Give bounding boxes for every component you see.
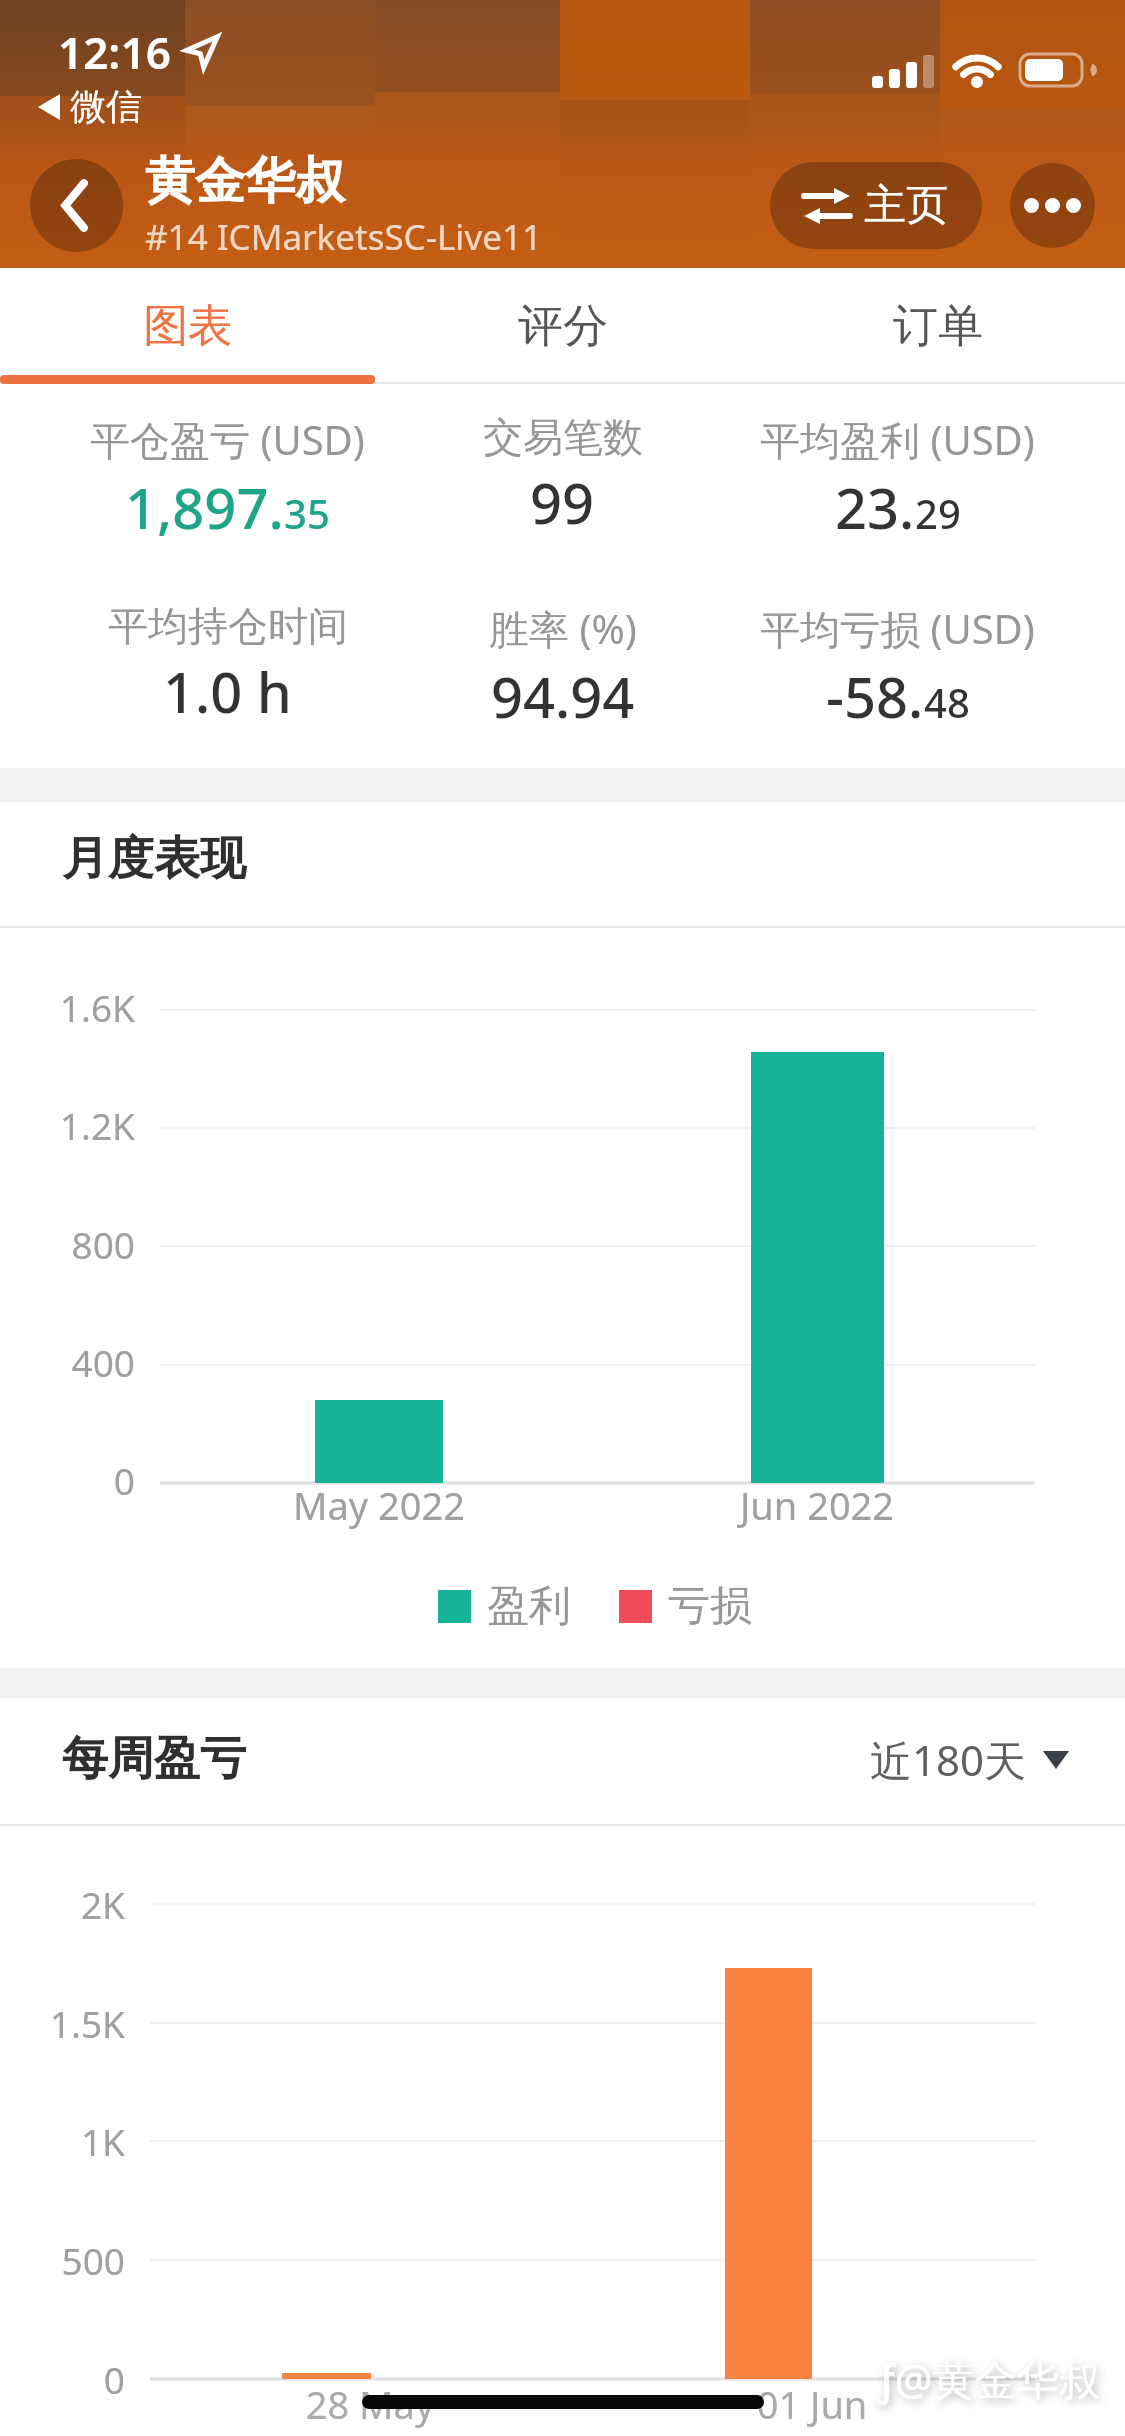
staticText: 评分 [518,298,608,355]
staticText: #14 ICMarketsSC-Live11 [145,213,542,261]
staticText: 01 Jun [692,2378,932,2430]
button[interactable]: 主页 [770,162,982,249]
staticText: 28 May [250,2378,490,2430]
staticText: Jun 2022 [697,1479,937,1531]
staticText: 94.94 [491,658,635,734]
staticText: 99 [530,464,595,540]
staticText: 平均持仓时间 [108,601,348,651]
staticText: 图表 [143,298,233,355]
staticText: 订单 [893,298,983,355]
staticText: 48 [924,675,970,729]
staticText: 1.6K [0,982,135,1032]
staticText: 800 [0,1219,135,1269]
staticText: 平均亏损 (USD) [760,601,1035,656]
staticText: 交易笔数 [483,412,643,462]
staticText: 1.5K [0,1998,125,2048]
staticText: 亏损 [668,1580,752,1633]
staticText: 1K [0,2116,125,2166]
staticText: 29 [915,486,961,540]
staticText: 0 [0,2354,125,2404]
staticText: 12:16 [58,22,171,82]
button[interactable]: 订单 [750,268,1125,384]
staticText: 平均盈利 (USD) [760,412,1035,467]
staticText: 1.2K [0,1100,135,1150]
staticText: May 2022 [259,1479,499,1531]
staticText: 35 [284,486,330,540]
staticText: 近180天 [870,1731,1027,1788]
staticText: 400 [0,1337,135,1387]
staticText: 2K [0,1879,125,1929]
staticText: -58. [826,658,924,734]
staticText: 微信 [70,84,142,129]
staticText: 胜率 (%) [489,601,637,656]
button[interactable] [1010,163,1095,248]
staticText: 主页 [864,179,948,232]
staticText: ƒ@黄金华叔 [876,2350,1101,2407]
staticText: 23. [835,469,915,545]
staticText: 黄金华叔 [145,150,345,213]
staticText: 月度表现 [62,830,246,888]
button[interactable]: 评分 [375,268,750,384]
button[interactable]: 图表 [0,268,375,384]
staticText: 1,897. [125,469,284,545]
staticText: 每周盈亏 [62,1730,246,1788]
staticText: 0 [0,1455,135,1505]
staticText: 盈利 [487,1580,571,1633]
button[interactable] [30,159,123,252]
staticText: 平仓盈亏 (USD) [90,412,365,467]
button[interactable]: 近180天 [870,1731,1069,1788]
staticText: 500 [0,2235,125,2285]
staticText: 1.0 h [163,653,292,729]
